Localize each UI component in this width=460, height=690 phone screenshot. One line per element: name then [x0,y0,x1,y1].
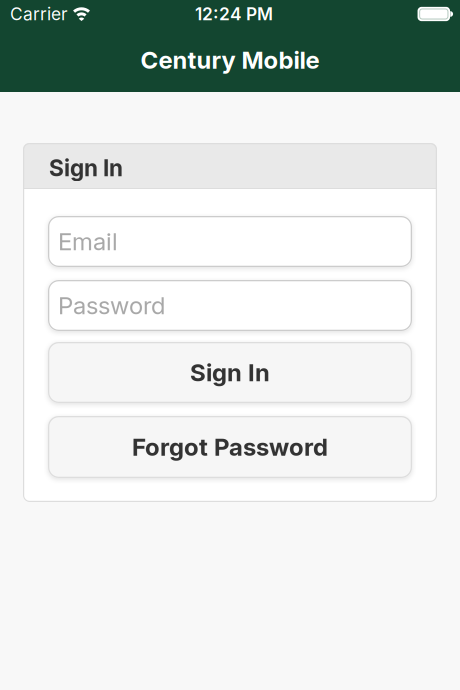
staticText: Sign In [49,155,123,181]
staticText: Carrier [10,4,68,24]
staticText: Century Mobile [140,46,319,74]
button[interactable]: Email [48,216,412,267]
button[interactable]: Forgot Password [48,416,412,478]
staticText: 12:24 PM [195,4,273,24]
staticText: Password [58,291,165,320]
button[interactable]: Password [48,280,412,331]
staticText: Sign In [190,358,270,387]
button[interactable]: Sign In [48,342,412,403]
staticText: Forgot Password [132,433,328,461]
staticText: Email [58,227,118,256]
